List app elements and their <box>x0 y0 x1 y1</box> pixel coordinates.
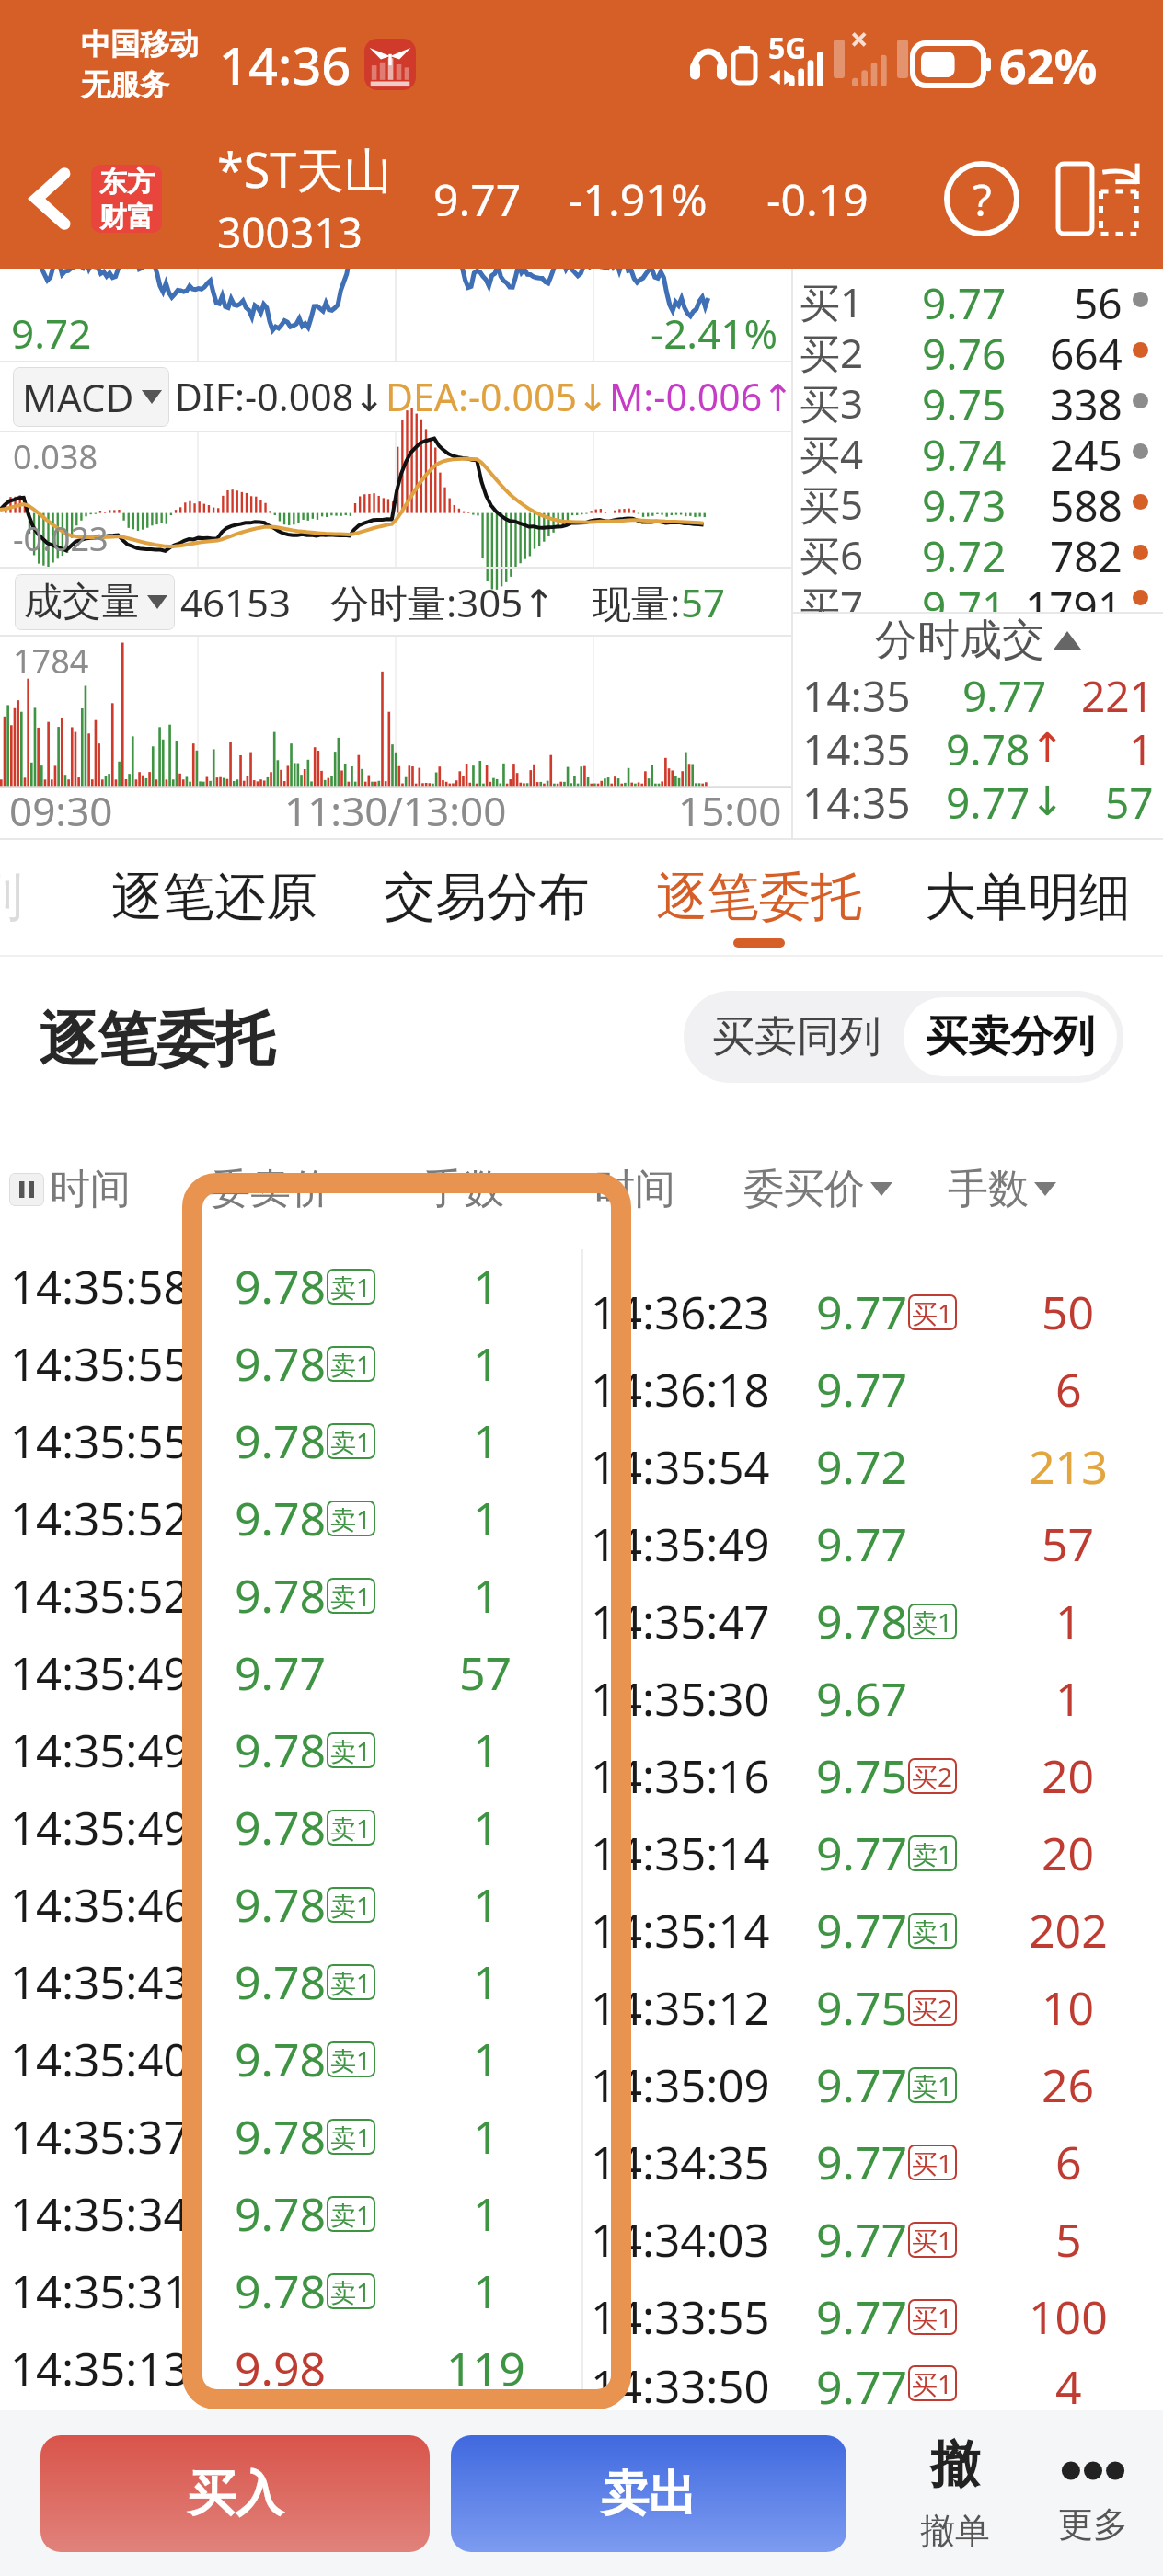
button[interactable]: 14:35:49 <box>0 1634 581 1711</box>
staticText: 1791 <box>1025 578 1123 612</box>
button[interactable]: 买5 <box>793 477 1163 527</box>
staticText: 1 <box>473 1409 500 1472</box>
staticText: 9.72 <box>816 1435 908 1498</box>
button[interactable]: 14:35:31 <box>0 2252 581 2329</box>
staticText: 202 <box>1029 1899 1108 1961</box>
button[interactable]: 14:36:23 <box>583 1273 1163 1351</box>
button[interactable]: 分时成交 <box>793 614 1163 667</box>
staticText: 卖1 <box>330 1424 372 1459</box>
button[interactable]: 委买价 <box>743 1164 892 1214</box>
staticText: 卖1 <box>330 1811 372 1846</box>
staticText: 9.77 <box>816 1358 908 1420</box>
button[interactable]: MACD <box>13 367 169 427</box>
staticText: ↑ <box>1031 724 1065 771</box>
staticText: 9.77 <box>962 667 1047 720</box>
button[interactable]: Pause updates <box>9 1173 44 1206</box>
button[interactable]: Rotate to landscape <box>1047 148 1148 249</box>
staticText: *ST天山 <box>217 136 393 201</box>
button[interactable]: 14:35:13 <box>0 2329 581 2407</box>
staticText: -0.023 <box>13 516 109 561</box>
staticText: 14:35:49 <box>591 1513 770 1575</box>
button[interactable]: 14:35:54 <box>583 1428 1163 1505</box>
button[interactable]: 委卖价 <box>210 1164 331 1214</box>
staticText: 14:35:13 <box>10 2338 190 2399</box>
button[interactable]: 14:35:09 <box>583 2046 1163 2123</box>
button[interactable]: 大单明细 <box>917 840 1138 955</box>
staticText: 14:34:03 <box>591 2209 770 2271</box>
staticText: 9.78 <box>235 2182 327 2245</box>
button[interactable]: 14:35:37 <box>0 2098 581 2175</box>
button[interactable]: 买7 <box>793 578 1163 612</box>
button[interactable]: 14:34:03 <box>583 2201 1163 2278</box>
button[interactable]: 14:35:52 <box>0 1479 581 1557</box>
button[interactable]: 14:35 <box>793 720 1163 774</box>
button[interactable]: 卖出 <box>451 2435 846 2552</box>
staticText: 卖1 <box>330 1270 372 1305</box>
button[interactable]: 14:35:49 <box>0 1711 581 1788</box>
button[interactable]: 14:35:16 <box>583 1737 1163 1814</box>
button[interactable]: 买入 <box>40 2435 430 2552</box>
button[interactable]: 手数 <box>948 1164 1056 1214</box>
button[interactable]: 14:33:55 <box>583 2278 1163 2355</box>
button[interactable]: 14:35:47 <box>583 1582 1163 1660</box>
staticText: 221 <box>1081 667 1154 720</box>
staticText: 买卖同列 <box>712 1010 881 1064</box>
button[interactable]: 买1 <box>793 274 1163 325</box>
staticText: 1 <box>473 2028 500 2090</box>
staticText: 9.78 <box>816 1590 908 1652</box>
button[interactable]: 买4 <box>793 426 1163 477</box>
staticText: -2.41% <box>651 305 778 361</box>
button[interactable]: Back <box>11 148 88 249</box>
button[interactable]: 成交量 <box>15 574 175 630</box>
button[interactable]: 买卖同列 <box>690 997 904 1076</box>
button[interactable]: 14:35:52 <box>0 1557 581 1634</box>
button[interactable]: 买3 <box>793 375 1163 426</box>
staticText: 9.77 <box>816 2208 908 2271</box>
staticText: 委买价 <box>743 1164 865 1214</box>
button[interactable]: 14:36:18 <box>583 1351 1163 1428</box>
staticText: 买入 <box>188 2464 283 2524</box>
button[interactable]: 14:35 <box>793 774 1163 827</box>
button[interactable]: 手数 <box>423 1164 504 1214</box>
button[interactable]: More <box>1024 2440 1162 2547</box>
staticText: 9.72 <box>922 527 1007 578</box>
staticText: ? <box>973 169 992 229</box>
button[interactable]: 14:35:30 <box>583 1660 1163 1737</box>
button[interactable]: 撤 <box>886 2433 1024 2553</box>
button[interactable]: 14:35:49 <box>583 1505 1163 1582</box>
button[interactable]: 14:35:40 <box>0 2020 581 2098</box>
button[interactable]: 14:35 <box>793 667 1163 720</box>
staticText: 买1 <box>912 1295 953 1330</box>
staticText: 4 <box>1055 2355 1082 2410</box>
staticText: 9.67 <box>816 1667 908 1730</box>
button[interactable]: 14:35:43 <box>0 1943 581 2020</box>
button[interactable]: 14:35:34 <box>0 2175 581 2252</box>
button[interactable]: 14:35:55 <box>0 1325 581 1402</box>
button[interactable]: 买卖分列 <box>904 997 1117 1076</box>
button[interactable]: 14:35:14 <box>583 1892 1163 1969</box>
staticText: 委卖价 <box>210 1164 331 1214</box>
button[interactable]: 14:33:50 <box>583 2355 1163 2410</box>
button[interactable]: 14:35:49 <box>0 1788 581 1866</box>
button[interactable]: 14:34:35 <box>583 2123 1163 2201</box>
button[interactable]: 14:35:12 <box>583 1969 1163 2046</box>
staticText: 大单明细 <box>925 865 1131 930</box>
button[interactable]: 逐笔还原 <box>104 840 325 955</box>
button[interactable]: 逐笔委托 <box>649 840 869 955</box>
staticText: 9.78 <box>235 2105 327 2168</box>
button[interactable]: 买6 <box>793 527 1163 578</box>
button[interactable]: 14:35:58 <box>0 1248 581 1325</box>
button[interactable]: 14:35:46 <box>0 1866 581 1943</box>
staticText: 成交量 <box>24 578 140 627</box>
staticText: 14:35:52 <box>10 1565 190 1627</box>
button[interactable]: 14:35:55 <box>0 1402 581 1479</box>
button[interactable]: 交易分布 <box>376 840 597 955</box>
button[interactable]: 14:35:14 <box>583 1814 1163 1892</box>
button[interactable]: 买2 <box>793 325 1163 375</box>
staticText: DEA:-0.005↓ <box>386 371 609 422</box>
staticText: 买1 <box>912 2366 953 2401</box>
staticText: -0.19 <box>766 169 869 229</box>
button[interactable]: Help <box>929 146 1034 251</box>
staticText: MACD <box>22 371 134 423</box>
staticText: 9.72 <box>11 305 92 361</box>
